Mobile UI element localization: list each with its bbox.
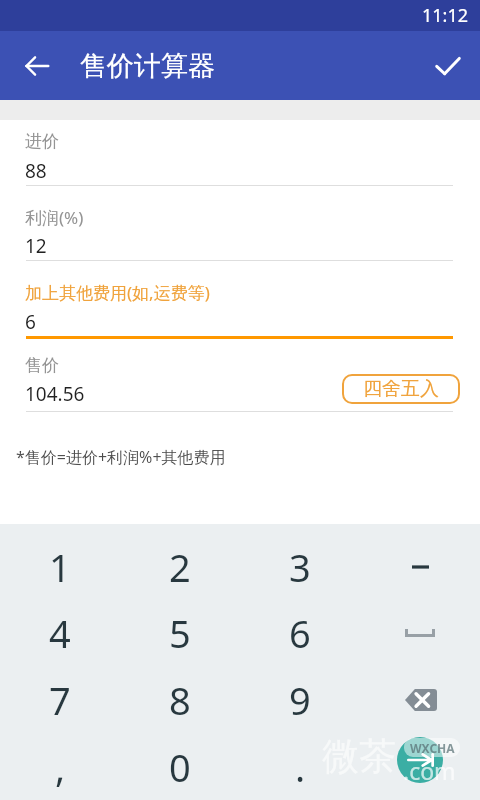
button[interactable]: 1 bbox=[0, 534, 120, 600]
button[interactable]: Minus bbox=[360, 534, 480, 600]
staticText: 8 bbox=[169, 674, 191, 726]
button[interactable]: 7 bbox=[0, 666, 120, 733]
staticText: 加上其他费用(如,运费等) bbox=[25, 281, 210, 304]
button[interactable]: 四舍五入 bbox=[342, 374, 460, 404]
staticText: *售价=进价+利润%+其他费用 bbox=[16, 446, 226, 468]
button[interactable]: Backspace bbox=[360, 666, 480, 733]
button[interactable]: 8 bbox=[120, 666, 240, 733]
staticText: 6 bbox=[289, 607, 311, 659]
staticText: , bbox=[55, 741, 66, 793]
staticText: 2 bbox=[169, 541, 191, 593]
button[interactable]: 0 bbox=[120, 733, 240, 800]
button[interactable]: 4 bbox=[0, 600, 120, 666]
staticText: 12 bbox=[25, 233, 47, 259]
button[interactable]: Confirm bbox=[424, 42, 472, 90]
button[interactable]: 利润(%) bbox=[26, 198, 453, 262]
staticText: 5 bbox=[169, 607, 191, 659]
staticText: 3 bbox=[289, 541, 311, 593]
staticText: 9 bbox=[289, 674, 311, 726]
button[interactable]: 2 bbox=[120, 534, 240, 600]
staticText: 1 bbox=[49, 541, 71, 593]
button[interactable]: , bbox=[0, 733, 120, 800]
staticText: 4 bbox=[49, 607, 71, 659]
button[interactable]: 加上其他费用(如,运费等) bbox=[26, 273, 453, 338]
button[interactable]: 售价 bbox=[26, 347, 453, 413]
staticText: 7 bbox=[49, 674, 71, 726]
button[interactable]: 6 bbox=[240, 600, 360, 666]
button[interactable]: 进价 bbox=[26, 123, 453, 187]
staticText: 售价 bbox=[25, 355, 59, 376]
button[interactable]: . bbox=[240, 733, 360, 800]
staticText: 104.56 bbox=[25, 381, 85, 407]
staticText: . bbox=[295, 741, 306, 793]
staticText: 进价 bbox=[25, 131, 59, 152]
staticText: WXCHA bbox=[410, 740, 455, 756]
staticText: 11:12 bbox=[422, 3, 469, 28]
staticText: 售价计算器 bbox=[80, 49, 215, 83]
staticText: 利润(%) bbox=[25, 206, 84, 229]
button[interactable]: 9 bbox=[240, 666, 360, 733]
staticText: 微茶 bbox=[322, 733, 396, 780]
staticText: 0 bbox=[169, 741, 191, 793]
staticText: 88 bbox=[25, 158, 47, 184]
button[interactable]: Space bbox=[360, 600, 480, 666]
button[interactable]: Back bbox=[13, 42, 61, 90]
staticText: 四舍五入 bbox=[363, 377, 439, 401]
staticText: .com bbox=[403, 755, 456, 786]
button[interactable]: Enter bbox=[360, 733, 480, 800]
button[interactable]: 3 bbox=[240, 534, 360, 600]
button[interactable]: 5 bbox=[120, 600, 240, 666]
staticText: 6 bbox=[25, 309, 36, 335]
